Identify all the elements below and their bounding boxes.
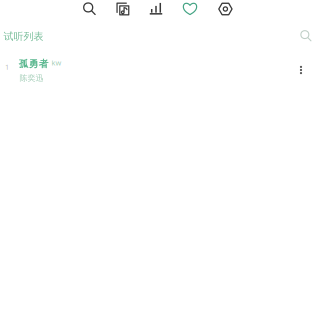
button[interactable]: More options <box>290 58 312 82</box>
button[interactable]: Albums <box>110 0 136 19</box>
button[interactable]: Settings <box>212 0 238 19</box>
staticText: 试听列表 <box>3 30 43 43</box>
button[interactable]: Favorites <box>177 0 203 18</box>
button[interactable]: Search <box>76 0 102 19</box>
staticText: kw <box>51 58 61 68</box>
staticText: 陈奕迅 <box>19 73 43 83</box>
button[interactable]: Charts <box>143 0 169 18</box>
button[interactable]: Search list <box>296 26 316 46</box>
staticText: 孤勇者 <box>19 58 49 70</box>
staticText: 1 <box>5 62 9 72</box>
